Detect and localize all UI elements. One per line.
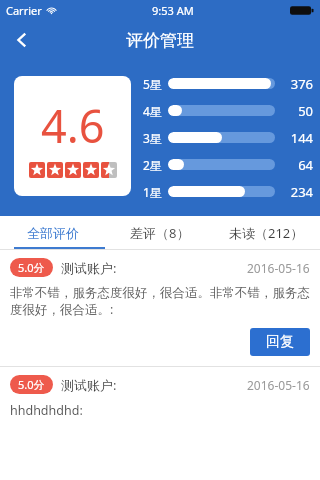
staticText: 非常不错，服务态度很好，很合适。非常不错，服务态度很好，很合适。: [10, 285, 310, 318]
staticText: 9:53 AM [152, 3, 194, 18]
staticText: 50 [283, 102, 313, 120]
staticText: 2016-05-16 [247, 260, 310, 276]
button[interactable]: 全部评价 [0, 216, 106, 250]
staticText: 评价管理 [126, 30, 194, 51]
staticText: 测试账户: [61, 259, 117, 277]
staticText: hhdhdhdhd: [10, 402, 83, 419]
button[interactable]: 5.0分 [0, 367, 320, 431]
staticText: 144 [283, 129, 313, 147]
button[interactable]: 未读（212） [213, 216, 320, 250]
staticText: 4.6 [41, 95, 105, 156]
staticText: 234 [283, 183, 313, 201]
button[interactable]: 回复 [250, 328, 310, 356]
staticText: 376 [283, 75, 313, 93]
staticText: Carrier [6, 3, 42, 18]
staticText: 5.0分 [18, 377, 45, 392]
staticText: 回复 [266, 333, 294, 351]
staticText: 4星 [143, 103, 162, 119]
button[interactable]: 差评（8） [106, 216, 213, 250]
staticText: 5.0分 [18, 260, 45, 275]
staticText: 测试账户: [61, 376, 117, 394]
staticText: 全部评价 [27, 225, 79, 241]
staticText: 5星 [143, 76, 162, 92]
staticText: 2016-05-16 [247, 377, 310, 393]
button[interactable]: 5.0分 [0, 250, 320, 366]
staticText: 未读（212） [229, 224, 304, 242]
staticText: 3星 [143, 130, 162, 146]
button[interactable]: Back [0, 20, 44, 60]
staticText: 1星 [143, 184, 162, 200]
staticText: 2星 [143, 157, 162, 173]
staticText: 64 [283, 156, 313, 174]
staticText: 差评（8） [130, 224, 190, 242]
